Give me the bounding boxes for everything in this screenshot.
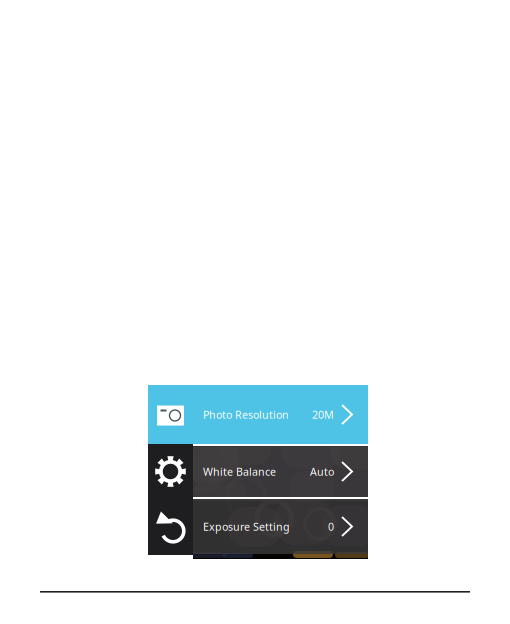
button[interactable]: White Balance [148,446,368,497]
staticText: Photo Resolution [203,407,289,422]
staticText: Exposure Setting [203,519,290,534]
button[interactable]: Photo Resolution [148,385,368,444]
staticText: 20M [312,407,334,422]
button[interactable]: Exposure Setting [148,499,368,554]
staticText: Auto [310,464,334,479]
staticText: White Balance [203,464,276,479]
staticText: 0 [328,519,334,534]
